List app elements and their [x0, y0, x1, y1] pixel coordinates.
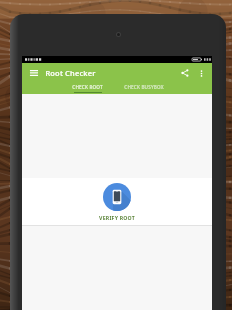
button[interactable]: Share	[178, 66, 192, 80]
button[interactable]: CHECK BUSYBOX	[114, 82, 174, 94]
staticText: Root Checker	[45, 68, 96, 78]
staticText: CHECK ROOT	[72, 84, 103, 90]
button[interactable]: Open navigation menu	[27, 66, 40, 79]
button[interactable]: VERIFY ROOT	[22, 178, 212, 226]
button[interactable]: More options	[195, 67, 207, 79]
staticText: CHECK BUSYBOX	[124, 84, 164, 90]
button[interactable]: CHECK ROOT	[61, 82, 114, 94]
staticText: VERIFY ROOT	[99, 214, 135, 221]
